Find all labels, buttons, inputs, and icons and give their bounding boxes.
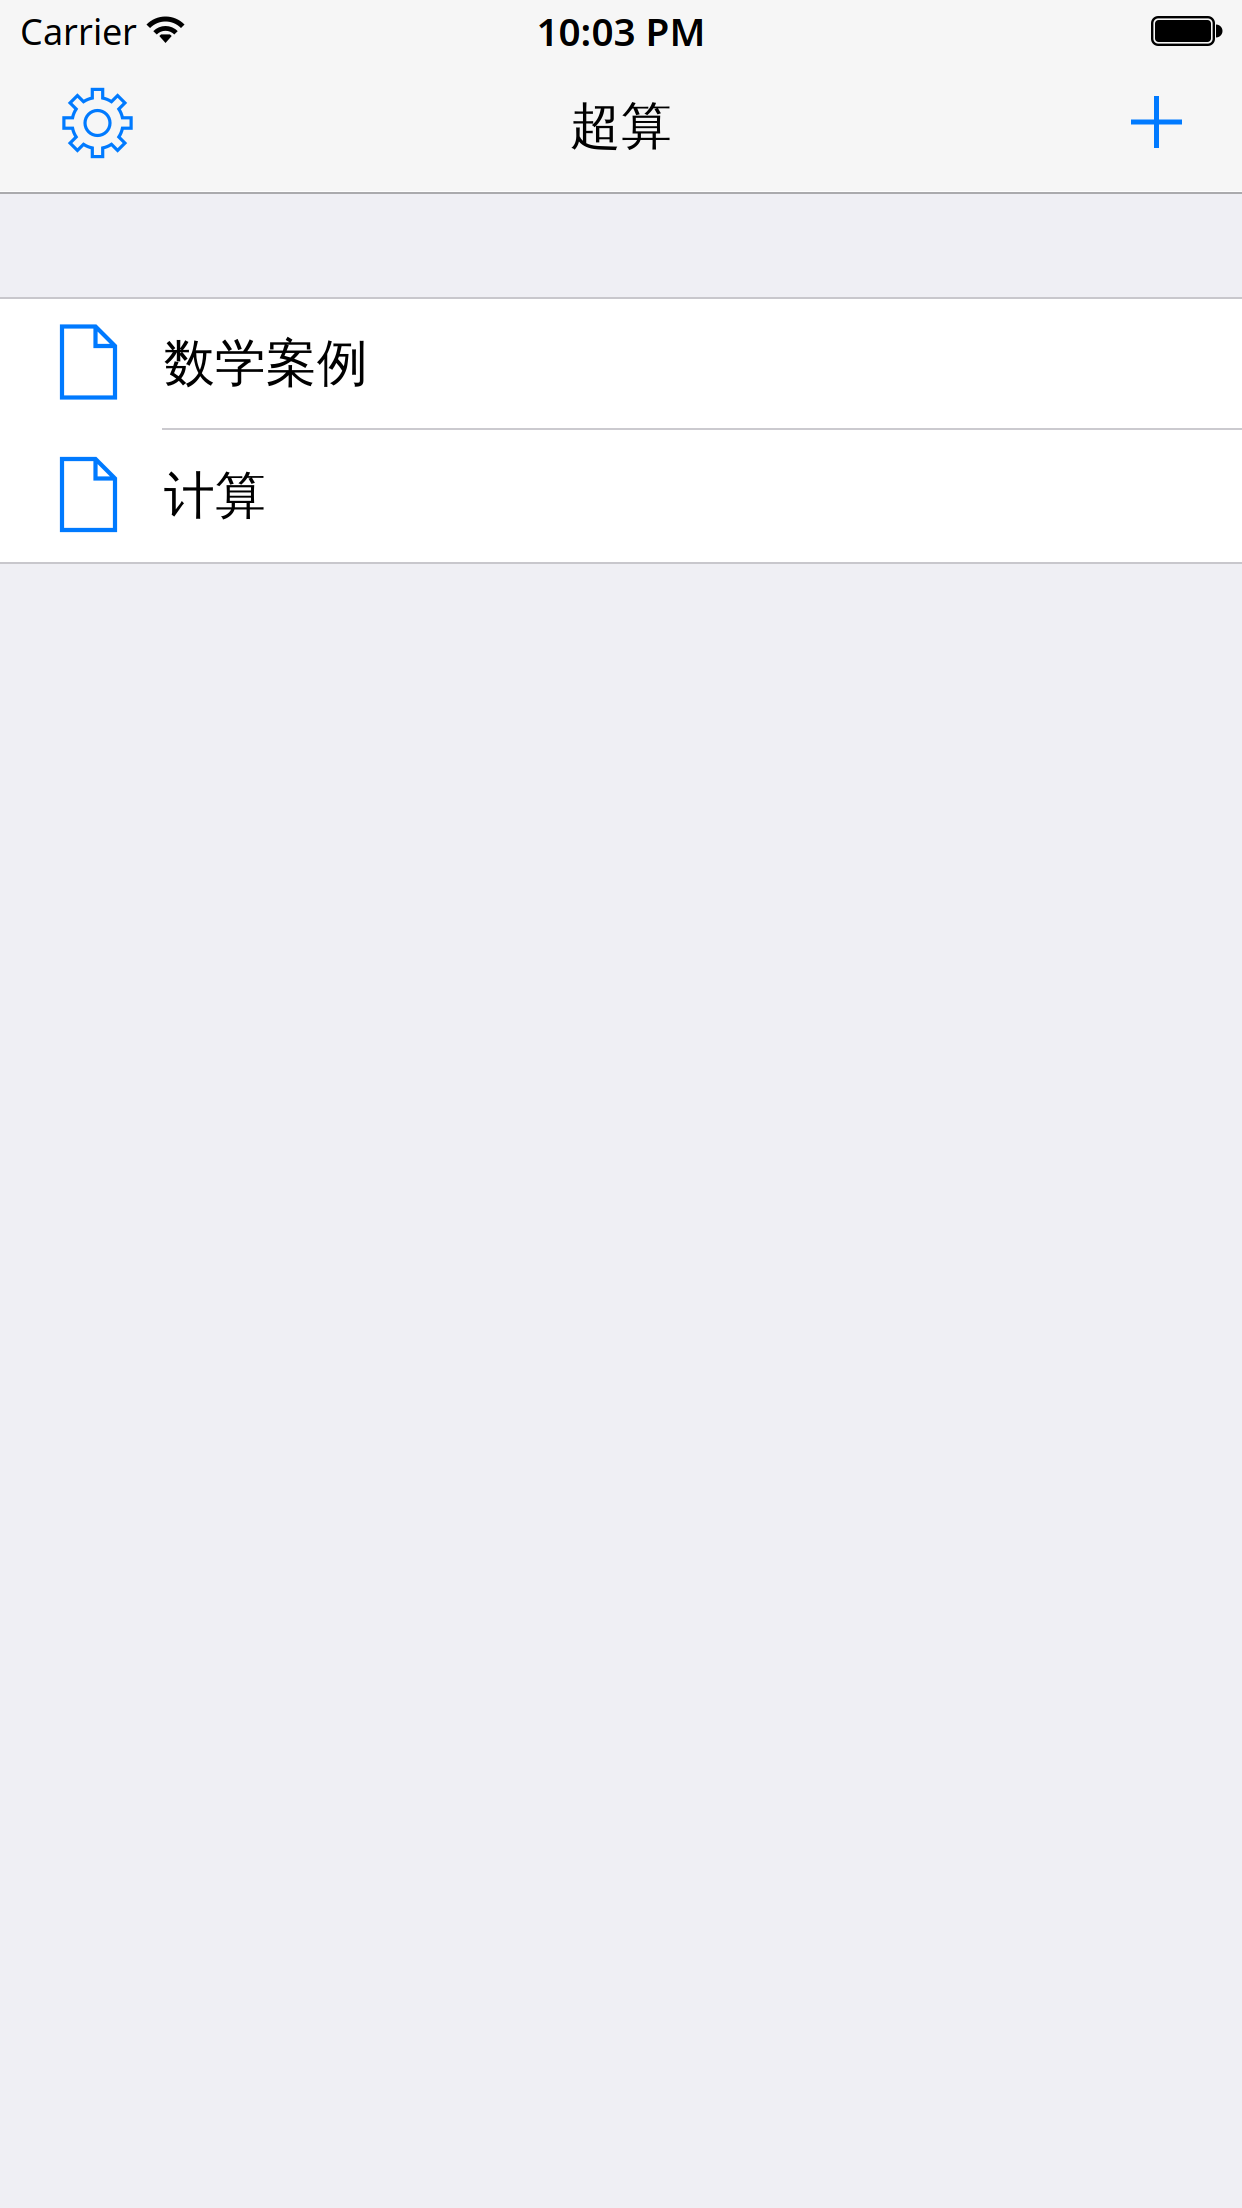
button[interactable]: 数学案例	[0, 299, 1242, 428]
staticText: Carrier	[20, 7, 137, 55]
staticText: 计算	[164, 465, 266, 527]
button[interactable]: Settings	[45, 62, 150, 191]
staticText: 10:03 PM	[536, 5, 705, 57]
staticText: 数学案例	[164, 332, 368, 395]
button[interactable]: 计算	[0, 430, 1242, 562]
staticText: 超算	[570, 95, 672, 158]
button[interactable]: Add	[1104, 62, 1209, 191]
